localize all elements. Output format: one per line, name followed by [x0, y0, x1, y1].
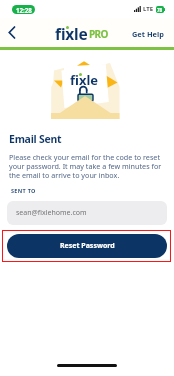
- staticText: SENT TO: [11, 187, 36, 194]
- staticText: fixle: [55, 23, 88, 44]
- button[interactable]: sean@fixlehome.com: [7, 201, 167, 225]
- staticText: PRO: [89, 27, 108, 41]
- staticText: 78: [157, 7, 163, 13]
- staticText: LTE: [143, 5, 154, 13]
- button[interactable]: Reset Password: [7, 234, 167, 258]
- button[interactable]: Back: [2, 23, 21, 42]
- staticText: 12:28: [16, 6, 32, 14]
- staticText: Get Help: [132, 29, 164, 39]
- staticText: Reset Password: [60, 241, 115, 251]
- staticText: Email Sent: [9, 132, 62, 146]
- staticText: fixle: [70, 71, 99, 89]
- staticText: Please check your email for the code to …: [9, 152, 162, 180]
- staticText: sean@fixlehome.com: [16, 208, 87, 218]
- button[interactable]: Get Help: [132, 29, 164, 39]
